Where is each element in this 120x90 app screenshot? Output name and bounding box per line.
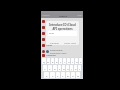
button[interactable]: J [70,65,73,71]
button[interactable]: U [67,58,70,64]
staticText: I [72,60,73,63]
button[interactable]: iCloud Drive [41,48,83,54]
button[interactable]: M [76,72,80,78]
staticText: Introduce ID iCloud API operations [47,23,78,30]
button[interactable]: E [51,58,54,64]
staticText: N [72,74,74,77]
button[interactable]: P [79,58,82,64]
button[interactable]: R [55,58,58,64]
staticText: S [49,67,51,70]
button[interactable]: Y [63,58,66,64]
button[interactable]: Mi Buzon [41,18,83,24]
button[interactable]: H [66,65,69,71]
staticText: Notas [46,44,53,47]
staticText: Acerca [59,14,67,17]
staticText: Contactos [46,32,57,35]
button[interactable]: L [78,65,81,71]
staticText: L [79,67,81,70]
staticText: Q [43,60,45,63]
staticText: M [77,74,80,77]
button[interactable]: K [74,65,77,71]
staticText: R [56,60,58,63]
staticText: F [59,67,61,70]
button[interactable]: Llamadas [41,54,83,57]
button[interactable]: D [53,65,57,71]
staticText: Y [64,60,66,63]
staticText: Email [49,32,55,35]
staticText: E [52,60,54,63]
button[interactable]: O [75,58,78,64]
staticText: Cancelar [50,42,59,45]
button[interactable]: Mensajes [41,24,83,30]
button[interactable]: B [66,72,70,78]
staticText: O [76,60,78,63]
staticText: Documentos y datos [50,52,67,54]
staticText: T [60,60,62,63]
staticText: Z [46,74,48,77]
staticText: X [52,74,54,77]
staticText: G [63,67,65,70]
button[interactable]: Calendario [41,36,83,42]
staticText: A [44,67,46,70]
button[interactable]: A [43,65,47,71]
staticText: Llamadas [46,54,56,57]
staticText: Volver Todo [64,42,77,45]
button[interactable]: T [59,58,62,64]
button[interactable]: Cancelar [46,41,62,45]
staticText: C [57,74,59,77]
staticText: Mi Buzon [46,20,56,23]
button[interactable]: Listo [77,14,82,17]
staticText: P [80,60,82,63]
button[interactable]: F [58,65,61,71]
button[interactable]: Z [44,72,49,78]
staticText: W [47,60,50,63]
button[interactable]: C [56,72,60,78]
staticText: V [62,74,64,77]
staticText: K [75,67,77,70]
staticText: H [67,67,69,70]
staticText: J [71,67,72,70]
button[interactable]: Volver Todo [62,41,79,45]
button[interactable]: G [62,65,65,71]
staticText: U [68,60,70,63]
staticText: iCloud Drive [50,49,63,52]
button[interactable]: Notas [41,42,83,48]
button[interactable]: W [47,58,50,64]
staticText: Mensajes [46,26,56,29]
button[interactable]: X [50,72,55,78]
button[interactable]: I [71,58,74,64]
button[interactable]: N [71,72,75,78]
button[interactable]: Q [42,58,46,64]
button[interactable]: V [61,72,65,78]
staticText: B [67,74,69,77]
button[interactable]: Contactos [41,30,83,36]
button[interactable]: Ajustes [42,14,50,17]
button[interactable]: S [48,65,52,71]
staticText: D [54,67,56,70]
